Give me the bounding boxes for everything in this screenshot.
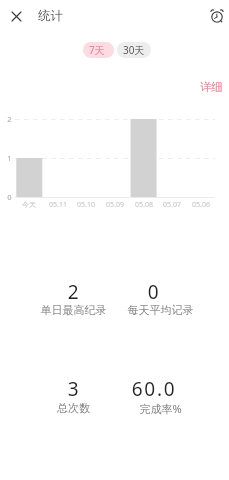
button[interactable]: Reminder <box>204 3 229 28</box>
staticText: 05.11 <box>43 200 73 210</box>
staticText: 统计 <box>38 8 63 24</box>
staticText: 05.08 <box>129 200 159 210</box>
staticText: 30天 <box>123 43 145 57</box>
staticText: 2 <box>5 114 14 124</box>
staticText: 60.0 <box>124 376 184 402</box>
staticText: 0 <box>5 192 14 202</box>
staticText: 今天 <box>14 200 44 209</box>
staticText: 05.09 <box>100 200 130 210</box>
button[interactable]: 30天 <box>117 42 151 58</box>
staticText: 05.10 <box>71 200 101 210</box>
staticText: 2 <box>44 279 104 305</box>
staticText: 0 <box>124 279 184 305</box>
staticText: 3 <box>44 376 104 402</box>
staticText: 总次数 <box>40 401 107 415</box>
button[interactable]: Close <box>4 4 29 29</box>
staticText: 05.07 <box>157 200 187 210</box>
staticText: 05.06 <box>186 200 216 210</box>
button[interactable]: 7天 <box>83 42 114 58</box>
button[interactable]: 详细 <box>192 72 229 100</box>
staticText: 单日最高纪录 <box>40 303 107 317</box>
staticText: 每天平均记录 <box>127 303 194 317</box>
staticText: 完成率% <box>127 401 194 416</box>
staticText: 1 <box>5 153 14 163</box>
staticText: 7天 <box>89 43 105 57</box>
staticText: 详细 <box>200 80 223 94</box>
